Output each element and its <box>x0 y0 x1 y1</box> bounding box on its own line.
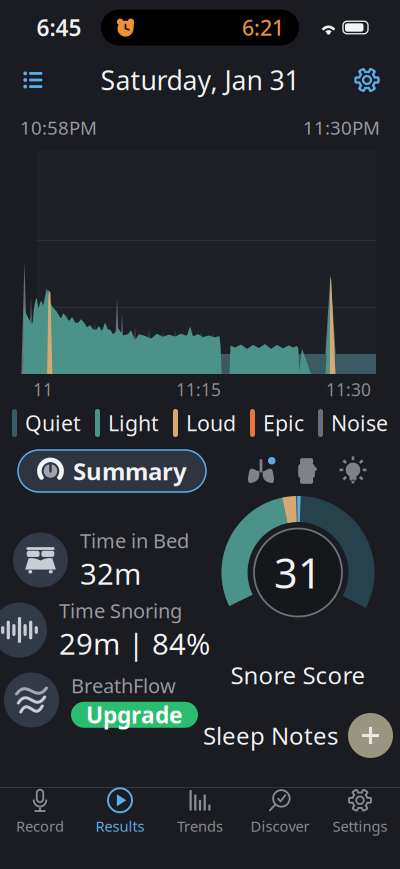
staticText: Time Snoring <box>59 597 182 624</box>
staticText: Discover <box>250 816 309 836</box>
staticText: Quiet <box>25 409 81 437</box>
button[interactable]: Discover <box>240 789 320 835</box>
button[interactable]: Add sleep note <box>348 713 393 758</box>
staticText: Results <box>95 816 144 836</box>
button[interactable]: Results <box>80 789 160 835</box>
button[interactable]: Settings <box>320 789 400 835</box>
staticText: 11:30 <box>326 378 371 401</box>
staticText: Time in Bed <box>80 527 189 554</box>
staticText: Saturday, Jan 31 <box>100 62 299 98</box>
button[interactable]: Trends <box>160 789 240 835</box>
staticText: Sleep Notes <box>203 720 338 751</box>
button[interactable]: Breathing <box>238 450 284 492</box>
button[interactable]: Sessions <box>11 58 55 102</box>
button[interactable]: Settings <box>345 58 389 102</box>
staticText: 11:30PM <box>303 115 380 140</box>
button[interactable]: Record <box>0 789 80 835</box>
staticText: Light <box>108 409 159 437</box>
staticText: Summary <box>73 455 187 487</box>
button[interactable]: Insights <box>330 450 376 492</box>
button[interactable]: Watch <box>284 450 330 492</box>
staticText: 31 <box>274 545 322 600</box>
staticText: 6:45 <box>36 12 81 42</box>
button[interactable]: Upgrade <box>71 702 198 728</box>
staticText: 11 <box>33 378 53 401</box>
staticText: 29m | 84% <box>59 624 210 663</box>
staticText: BreathFlow <box>71 672 176 699</box>
staticText: Snore Score <box>230 659 365 691</box>
staticText: Loud <box>186 409 236 437</box>
staticText: Upgrade <box>86 700 183 730</box>
staticText: Trends <box>177 816 223 836</box>
staticText: Noise <box>331 409 388 437</box>
staticText: 10:58PM <box>20 115 97 140</box>
staticText: 11:15 <box>176 378 221 401</box>
staticText: 32m <box>80 554 141 593</box>
button[interactable]: Summary <box>18 450 206 492</box>
staticText: Epic <box>263 409 304 437</box>
staticText: Record <box>16 816 64 836</box>
staticText: Settings <box>332 816 387 836</box>
staticText: 6:21 <box>242 13 284 42</box>
